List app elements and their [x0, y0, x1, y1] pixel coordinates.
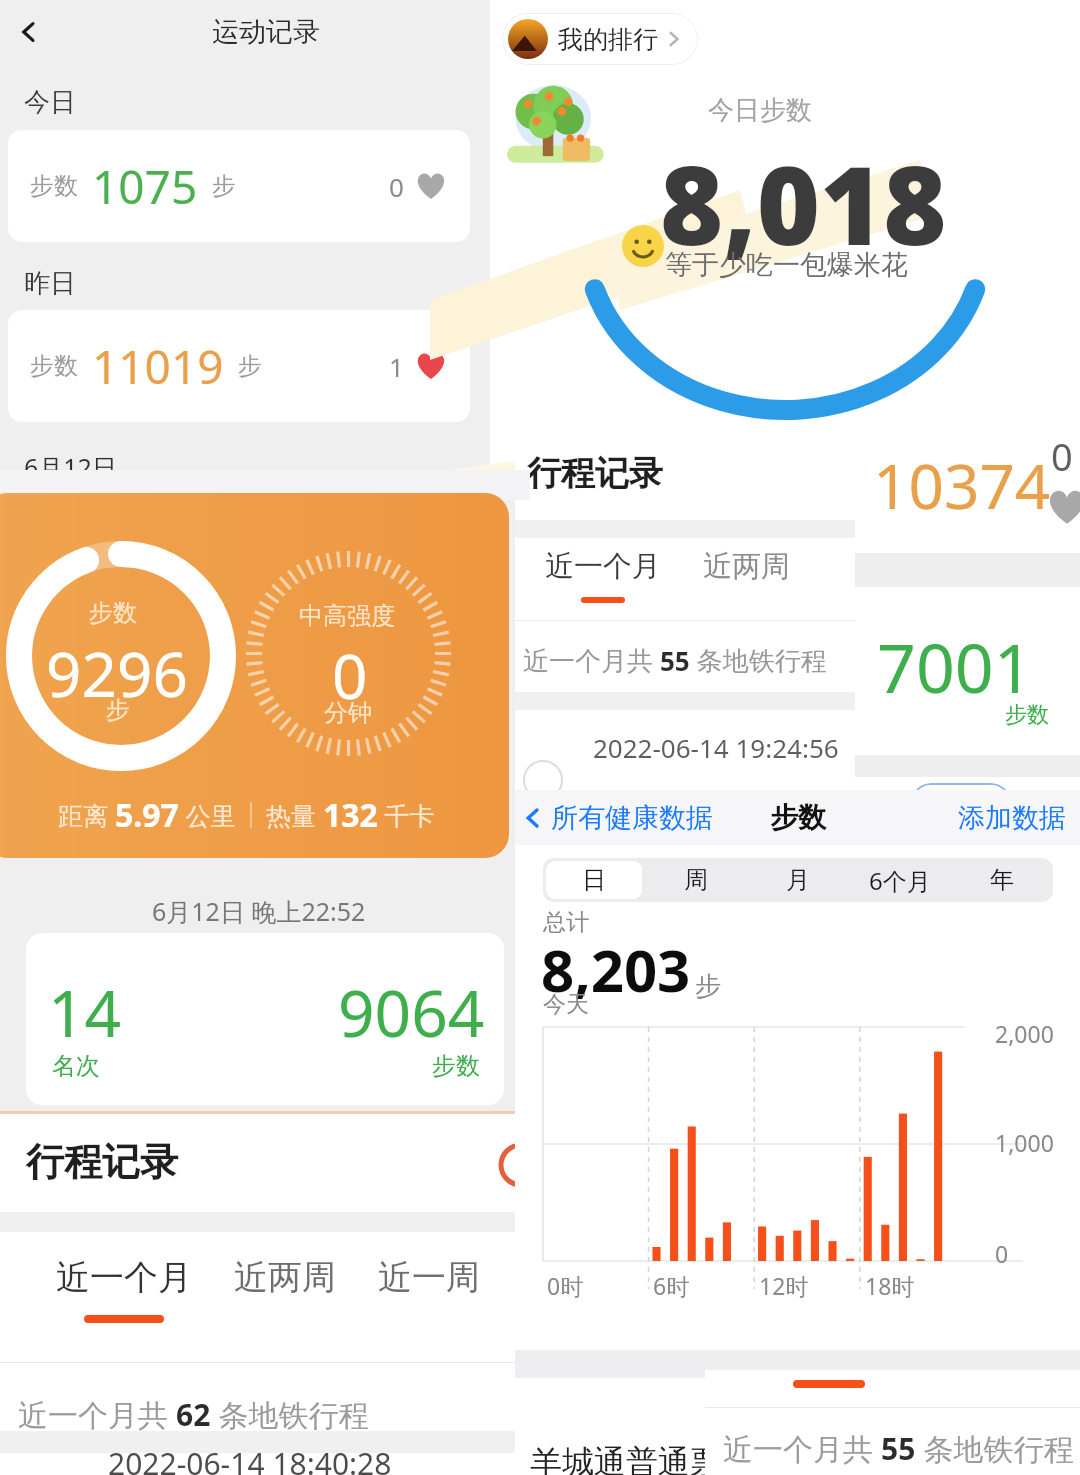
staticText: 14	[48, 969, 122, 1056]
staticText: 我的排行	[558, 24, 658, 55]
staticText: 1,000	[995, 1127, 1054, 1158]
button[interactable]: 近两周	[234, 1256, 336, 1299]
staticText: 步	[238, 351, 262, 381]
staticText: 55	[660, 643, 690, 678]
staticText: 0	[389, 169, 404, 204]
button[interactable]: 步数	[8, 130, 470, 242]
staticText: 距离	[58, 798, 115, 832]
staticText: 18时	[865, 1270, 915, 1301]
staticText: 步数	[30, 171, 78, 201]
button[interactable]: Back	[6, 9, 52, 55]
staticText: 近一个月	[545, 548, 661, 585]
staticText: 步数	[1005, 701, 1049, 729]
button[interactable]	[911, 783, 1011, 823]
staticText: 0时	[547, 1270, 584, 1301]
staticText: 条地铁行程	[211, 1394, 369, 1435]
staticText: 8,203	[541, 930, 691, 1009]
button[interactable]: 14	[26, 933, 504, 1105]
staticText: 月	[786, 865, 810, 895]
button[interactable]: 月	[750, 861, 846, 899]
staticText: 0	[332, 633, 368, 717]
staticText: 12时	[759, 1270, 809, 1301]
staticText: 6时	[653, 1270, 690, 1301]
button[interactable]: 日	[546, 861, 642, 899]
staticText: 62	[176, 1394, 211, 1435]
staticText: 2,000	[995, 1018, 1054, 1049]
staticText: 行程记录	[26, 1138, 178, 1186]
staticText: 步数	[89, 598, 137, 628]
staticText: 所有健康数据	[551, 801, 713, 835]
staticText: 周	[684, 865, 708, 895]
staticText: 7001	[877, 620, 1033, 713]
button[interactable]: 步数	[0, 493, 509, 858]
button[interactable]: 近一个月	[56, 1256, 192, 1323]
staticText: 分钟	[324, 698, 372, 728]
staticText: 总计	[543, 908, 589, 937]
staticText: 132	[323, 793, 378, 837]
staticText: 条地铁行程	[916, 1428, 1074, 1469]
button[interactable]: 近一个月	[545, 548, 661, 603]
staticText: 名次	[52, 1051, 100, 1081]
staticText: 等于少吃一包爆米花	[665, 248, 908, 282]
staticText: 0	[995, 1238, 1009, 1269]
staticText: 9296	[46, 631, 188, 715]
staticText: 0	[1051, 430, 1073, 482]
staticText: 千卡	[378, 798, 435, 832]
staticText: 年	[990, 865, 1014, 895]
staticText: 2022-06-14 18:40:28	[108, 1443, 392, 1475]
staticText: 步	[212, 171, 236, 201]
staticText: 中高强度	[299, 601, 395, 631]
staticText: 步数	[770, 800, 826, 835]
button[interactable]: 年	[954, 861, 1050, 899]
staticText: 今日	[24, 86, 76, 119]
staticText: 55	[881, 1428, 916, 1469]
staticText: 1	[389, 349, 404, 384]
staticText: 近一个月共	[523, 642, 660, 678]
staticText: 9064	[338, 969, 485, 1056]
staticText: 条地铁行程	[690, 642, 827, 678]
staticText: 近一个月共	[18, 1394, 176, 1435]
staticText: 日	[582, 865, 606, 895]
staticText: 运动记录	[212, 15, 320, 49]
button[interactable]: 近一周	[378, 1256, 480, 1299]
button[interactable]: 6个月	[852, 861, 948, 899]
staticText: 行程记录	[527, 452, 663, 495]
staticText: 步数	[30, 351, 78, 381]
button[interactable]: 步数	[8, 310, 470, 422]
staticText: 近一个月	[56, 1256, 192, 1299]
staticText: 6月12日	[24, 450, 117, 484]
button[interactable]: 周	[648, 861, 744, 899]
staticText: 5.97	[115, 793, 179, 837]
staticText: 公里	[179, 798, 236, 832]
button[interactable]: 所有健康数据	[523, 801, 713, 835]
staticText: 步数	[432, 1051, 480, 1081]
staticText: 6月12日 晚上22:52	[152, 894, 366, 928]
staticText: 热量	[266, 798, 323, 832]
staticText: 11019	[92, 335, 224, 398]
staticText: 羊城通普通票	[530, 1442, 722, 1475]
button[interactable]: 我的排行	[502, 13, 698, 65]
staticText: 近一个月共	[723, 1428, 881, 1469]
staticText: 10374	[873, 443, 1051, 527]
staticText: 8,018	[660, 130, 947, 277]
button[interactable]: 近两周	[703, 548, 790, 585]
staticText: 6个月	[869, 864, 931, 897]
staticText: 今日步数	[708, 94, 812, 127]
staticText: 步	[106, 695, 130, 725]
staticText: 步	[695, 970, 721, 1003]
button[interactable]: 添加数据	[958, 801, 1066, 835]
staticText: 2022-06-14 19:24:56	[593, 730, 839, 765]
staticText: 昨日	[24, 267, 76, 300]
staticText: 今天	[543, 990, 589, 1019]
staticText: 1075	[92, 155, 198, 218]
